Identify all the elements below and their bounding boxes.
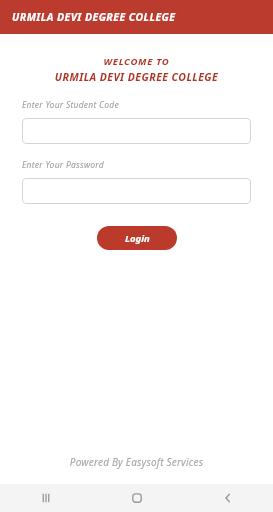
staticText: Enter Your Student Code xyxy=(22,99,119,111)
staticText: Login xyxy=(125,232,150,245)
staticText: Powered By Easysoft Services xyxy=(0,455,273,469)
button[interactable]: Login xyxy=(97,226,177,250)
button[interactable]: Back xyxy=(182,484,273,512)
staticText: URMILA DEVI DEGREE COLLEGE xyxy=(0,70,273,84)
button[interactable]: Text input field xyxy=(22,178,251,204)
button[interactable]: Text input field xyxy=(22,118,251,144)
button[interactable]: Recent apps xyxy=(0,484,91,512)
staticText: URMILA DEVI DEGREE COLLEGE xyxy=(12,10,176,24)
button[interactable]: Home xyxy=(91,484,182,512)
staticText: WELCOME TO xyxy=(0,55,273,68)
staticText: Enter Your Password xyxy=(22,159,104,171)
